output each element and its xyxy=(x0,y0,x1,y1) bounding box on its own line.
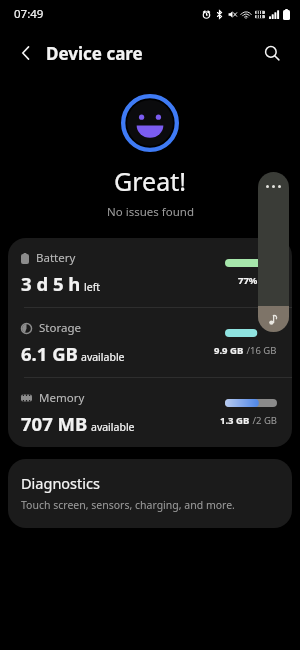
staticText: Memory xyxy=(39,390,85,406)
staticText: 77% ava xyxy=(238,274,277,287)
staticText: 9.9 GB xyxy=(214,344,244,357)
staticText: Touch screen, sensors, charging, and mor… xyxy=(21,498,235,512)
button[interactable]: Search xyxy=(254,35,290,71)
staticText: 07:49 xyxy=(14,6,44,22)
button[interactable]: Storage xyxy=(8,308,292,377)
staticText: Battery xyxy=(36,250,76,266)
staticText: 707 MB xyxy=(21,411,88,436)
staticText: Device care xyxy=(46,42,143,65)
staticText: /2 GB xyxy=(250,414,277,427)
button[interactable]: Diagnostics xyxy=(8,459,292,528)
staticText: available xyxy=(91,420,135,434)
staticText: No issues found xyxy=(107,204,194,220)
staticText: Diagnostics xyxy=(21,473,100,493)
button[interactable]: Battery xyxy=(8,238,292,307)
staticText: Storage xyxy=(39,320,81,336)
button[interactable]: Back xyxy=(8,35,44,71)
staticText: 3 d 5 h xyxy=(21,271,81,296)
staticText: left xyxy=(84,280,101,294)
staticText: 6.1 GB xyxy=(21,341,78,366)
staticText: /16 GB xyxy=(244,344,277,357)
button[interactable]: Memory xyxy=(8,378,292,447)
staticText: 1.3 GB xyxy=(220,414,250,427)
staticText: available xyxy=(81,350,125,364)
staticText: Great! xyxy=(114,164,186,198)
button[interactable]: Edge panel xyxy=(258,172,289,332)
